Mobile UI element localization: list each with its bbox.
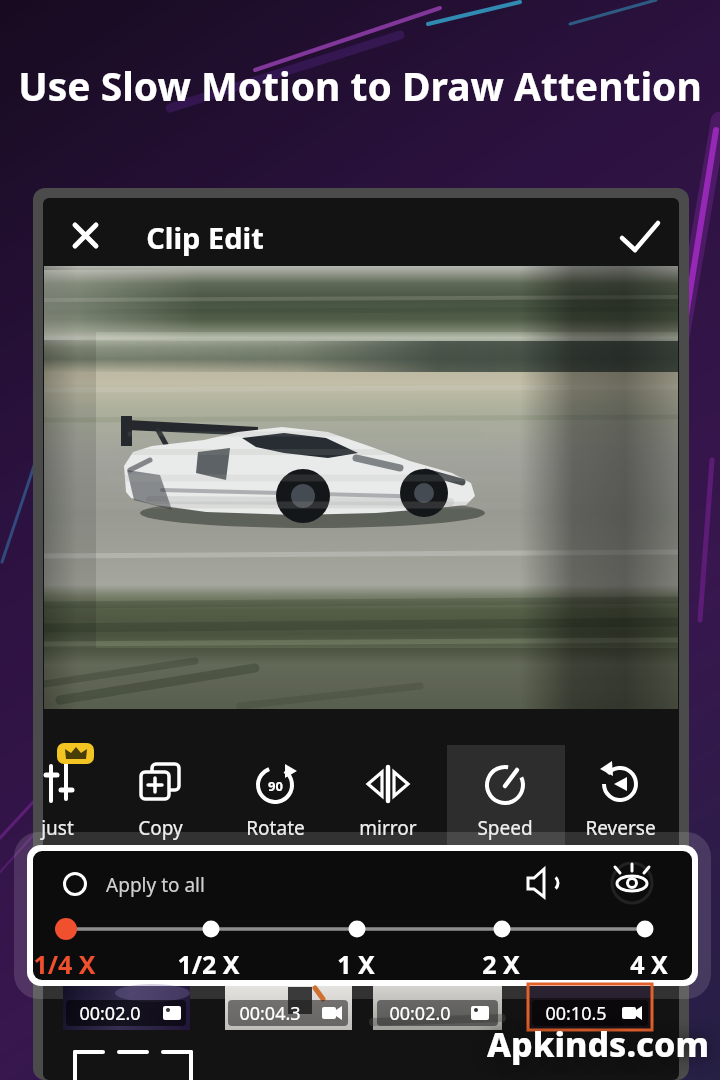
button[interactable] — [518, 858, 568, 908]
button[interactable] — [570, 740, 670, 845]
staticText: 4 X — [630, 947, 668, 981]
staticText: Speed — [477, 815, 533, 841]
staticText: Use Slow Motion to Draw Attention — [18, 59, 702, 112]
button[interactable] — [225, 740, 325, 845]
staticText: 1/2 X — [177, 947, 240, 981]
staticText: Apkinds.com — [487, 1021, 709, 1067]
staticText: Rotate — [246, 815, 305, 841]
button[interactable] — [60, 210, 112, 262]
staticText: 90 — [268, 777, 283, 795]
button[interactable] — [110, 740, 210, 845]
staticText: Clip Edit — [146, 218, 264, 257]
button[interactable] — [447, 745, 565, 845]
staticText: mirror — [359, 815, 417, 841]
staticText: 1 X — [337, 947, 375, 981]
staticText: Copy — [138, 815, 183, 841]
button[interactable] — [338, 740, 438, 845]
staticText: 00:04.3 — [239, 1001, 301, 1026]
button[interactable] — [40, 905, 660, 955]
staticText: 00:02.0 — [79, 1001, 141, 1026]
staticText: 1/4 X — [33, 947, 96, 981]
button[interactable] — [528, 986, 652, 1030]
staticText: 00:02.0 — [389, 1001, 451, 1026]
staticText: 00:10.5 — [545, 1001, 607, 1026]
staticText: Apply to all — [106, 872, 205, 898]
button[interactable] — [225, 986, 352, 1030]
button[interactable] — [615, 210, 681, 262]
button[interactable] — [373, 986, 502, 1030]
staticText: Reverse — [585, 815, 656, 841]
staticText: just — [41, 815, 74, 841]
button[interactable] — [24, 740, 94, 845]
staticText: 2 X — [482, 947, 520, 981]
staticText: Apkinds.com — [487, 1021, 709, 1067]
button[interactable] — [63, 986, 190, 1030]
button[interactable] — [607, 858, 657, 908]
button[interactable] — [55, 862, 235, 904]
